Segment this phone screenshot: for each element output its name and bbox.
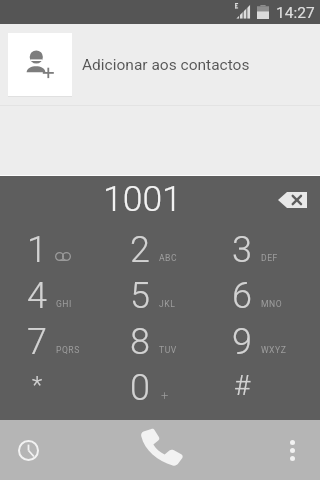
button[interactable]: 5: [103, 273, 206, 319]
staticText: 0: [130, 367, 150, 409]
button[interactable]: 1: [0, 227, 103, 273]
button[interactable]: #: [205, 365, 308, 411]
button[interactable]: 3: [205, 227, 308, 273]
staticText: 1001: [103, 178, 182, 220]
staticText: +: [161, 388, 169, 403]
staticText: Adicionar aos contactos: [82, 56, 250, 74]
button[interactable]: More options: [264, 420, 320, 480]
staticText: #: [234, 369, 251, 402]
staticText: GHI: [56, 299, 72, 309]
button[interactable]: 2: [103, 227, 206, 273]
staticText: *: [32, 371, 43, 399]
staticText: 6: [232, 275, 252, 317]
button[interactable]: *: [0, 365, 103, 411]
staticText: 4: [27, 275, 47, 317]
staticText: 2: [130, 229, 150, 271]
button[interactable]: 7: [0, 319, 103, 365]
staticText: 7: [27, 321, 47, 363]
staticText: MNO: [261, 299, 283, 309]
staticText: 3: [232, 229, 252, 271]
staticText: JKL: [159, 299, 176, 309]
button[interactable]: Adicionar aos contactos: [0, 24, 320, 105]
staticText: TUV: [159, 345, 177, 355]
staticText: 1: [27, 229, 47, 271]
button[interactable]: Backspace: [270, 180, 315, 220]
button[interactable]: 0: [103, 365, 206, 411]
button[interactable]: 8: [103, 319, 206, 365]
staticText: PQRS: [56, 345, 80, 355]
staticText: 14:27: [276, 4, 315, 22]
button[interactable]: Recent calls: [0, 420, 56, 480]
staticText: 5: [130, 275, 150, 317]
button[interactable]: Call: [131, 420, 191, 480]
button[interactable]: 9: [205, 319, 308, 365]
button[interactable]: 4: [0, 273, 103, 319]
staticText: WXYZ: [261, 345, 287, 355]
staticText: DEF: [261, 253, 278, 263]
staticText: 8: [130, 321, 150, 363]
staticText: 9: [232, 321, 252, 363]
staticText: ABC: [159, 253, 178, 263]
button[interactable]: 6: [205, 273, 308, 319]
